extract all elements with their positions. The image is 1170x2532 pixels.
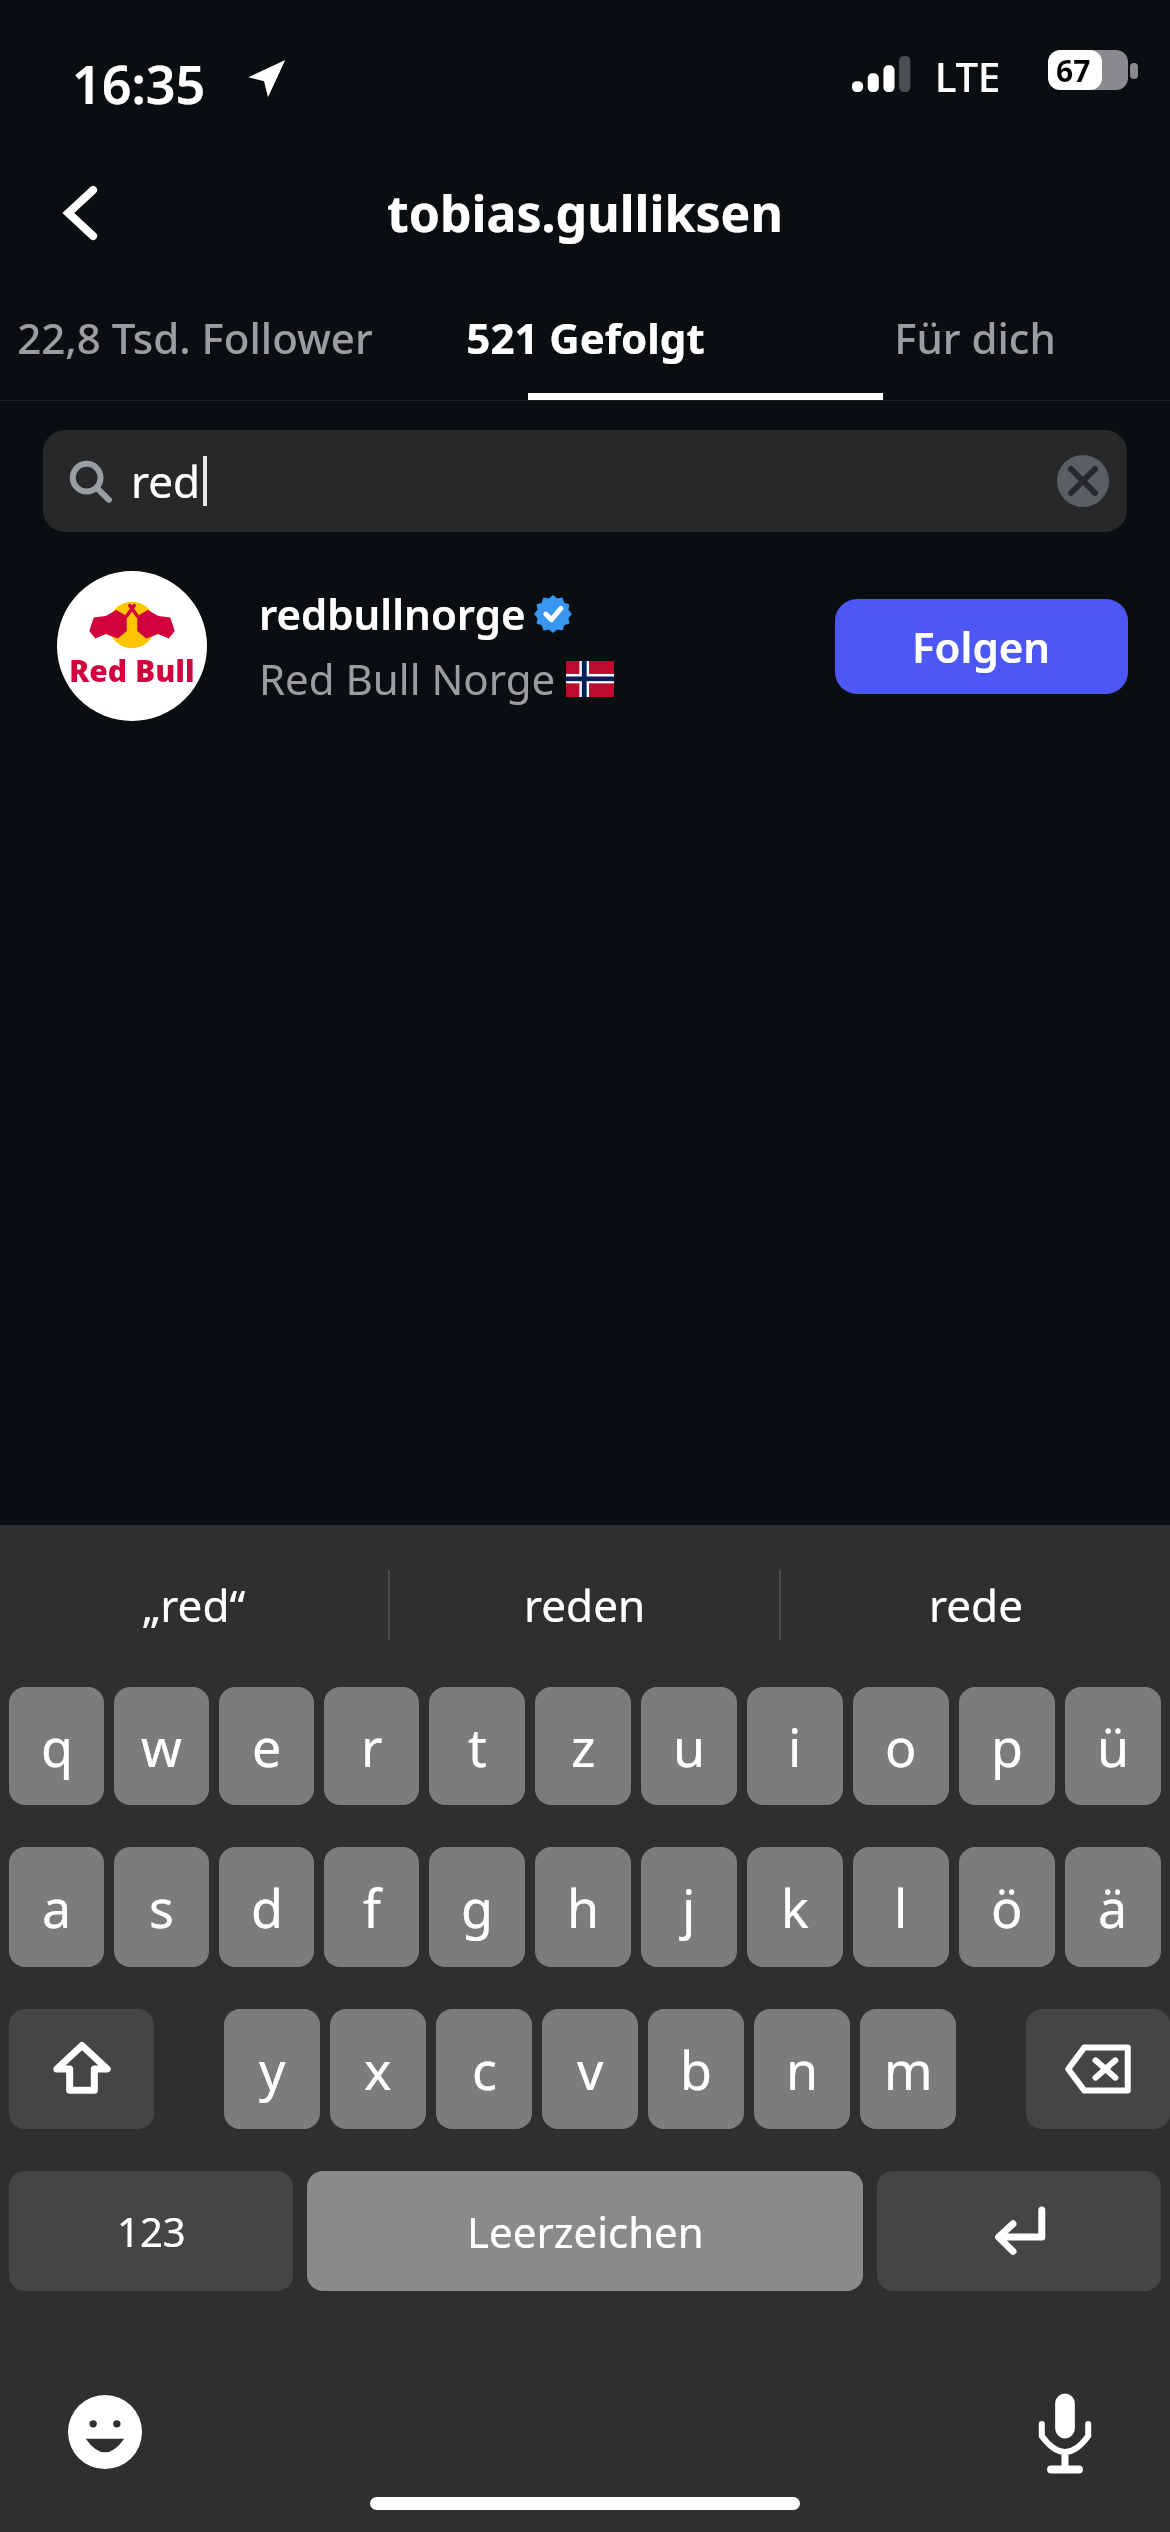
button[interactable]: p: [959, 1687, 1055, 1805]
button[interactable]: x: [330, 2009, 426, 2129]
button[interactable]: reden: [390, 1525, 779, 1685]
button[interactable]: b: [648, 2009, 744, 2129]
staticText: Red Bull: [69, 650, 195, 691]
staticText: Für dich: [894, 309, 1056, 366]
button[interactable]: d: [219, 1847, 314, 1967]
staticText: b: [680, 2034, 712, 2105]
staticText: q: [41, 1711, 73, 1782]
staticText: 22,8 Tsd. Follower: [17, 309, 373, 366]
button[interactable]: f: [324, 1847, 419, 1967]
staticText: r: [361, 1711, 383, 1782]
staticText: LTE: [935, 49, 1001, 103]
staticText: s: [149, 1872, 174, 1943]
staticText: h: [567, 1872, 600, 1943]
button[interactable]: Back: [28, 158, 138, 268]
staticText: 521 Gefolgt: [466, 309, 705, 366]
button[interactable]: k: [747, 1847, 843, 1967]
button[interactable]: a: [9, 1847, 104, 1967]
button[interactable]: u: [641, 1687, 737, 1805]
staticText: d: [251, 1872, 283, 1943]
staticText: y: [259, 2034, 286, 2105]
staticText: ö: [991, 1872, 1023, 1943]
staticText: c: [472, 2034, 497, 2105]
button[interactable]: Return: [877, 2171, 1161, 2291]
button[interactable]: Backspace: [1026, 2009, 1170, 2129]
button[interactable]: o: [853, 1687, 949, 1805]
staticText: g: [461, 1872, 493, 1943]
button[interactable]: s: [114, 1847, 209, 1967]
staticText: reden: [524, 1575, 646, 1635]
button[interactable]: t: [429, 1687, 525, 1805]
button[interactable]: m: [860, 2009, 956, 2129]
staticText: m: [884, 2034, 933, 2105]
button[interactable]: red: [43, 430, 1127, 532]
button[interactable]: Leerzeichen: [307, 2171, 863, 2291]
button[interactable]: z: [535, 1687, 631, 1805]
staticText: 16:35: [72, 48, 206, 119]
button[interactable]: y: [224, 2009, 320, 2129]
staticText: a: [42, 1872, 72, 1943]
button[interactable]: v: [542, 2009, 638, 2129]
staticText: j: [682, 1872, 696, 1943]
button[interactable]: r: [324, 1687, 419, 1805]
staticText: i: [788, 1711, 802, 1782]
staticText: o: [885, 1711, 917, 1782]
button[interactable]: 123: [9, 2171, 293, 2291]
button[interactable]: j: [641, 1847, 737, 1967]
staticText: ü: [1097, 1711, 1130, 1782]
staticText: n: [786, 2034, 819, 2105]
staticText: 123: [117, 2204, 186, 2258]
staticText: f: [363, 1872, 381, 1943]
button[interactable]: l: [853, 1847, 949, 1967]
button[interactable]: Emoji: [60, 2387, 150, 2477]
button[interactable]: Folgen: [835, 599, 1128, 694]
button[interactable]: ü: [1065, 1687, 1161, 1805]
button[interactable]: 521 Gefolgt: [390, 275, 780, 400]
button[interactable]: e: [219, 1687, 314, 1805]
button[interactable]: q: [9, 1687, 104, 1805]
staticText: Red Bull Norge: [259, 650, 556, 707]
staticText: u: [673, 1711, 706, 1782]
staticText: v: [577, 2034, 604, 2105]
staticText: k: [781, 1872, 809, 1943]
button[interactable]: 22,8 Tsd. Follower: [0, 275, 390, 400]
staticText: t: [468, 1711, 487, 1782]
button[interactable]: Red Bull: [0, 561, 1170, 731]
staticText: 67: [1056, 50, 1091, 90]
button[interactable]: Shift: [9, 2009, 154, 2129]
button[interactable]: ö: [959, 1847, 1055, 1967]
staticText: x: [364, 2034, 392, 2105]
staticText: p: [991, 1711, 1023, 1782]
button[interactable]: „red“: [0, 1525, 388, 1685]
staticText: red: [131, 451, 201, 511]
button[interactable]: g: [429, 1847, 525, 1967]
staticText: z: [571, 1711, 596, 1782]
staticText: Folgen: [912, 618, 1051, 675]
button[interactable]: w: [114, 1687, 209, 1805]
staticText: „red“: [142, 1575, 246, 1635]
button[interactable]: i: [747, 1687, 843, 1805]
staticText: w: [141, 1711, 182, 1782]
staticText: tobias.gulliksen: [387, 179, 783, 247]
staticText: redbullnorge: [259, 585, 526, 642]
button[interactable]: h: [535, 1847, 631, 1967]
staticText: l: [894, 1872, 908, 1943]
button[interactable]: Dictation: [1020, 2387, 1110, 2477]
staticText: e: [252, 1711, 282, 1782]
button[interactable]: c: [436, 2009, 532, 2129]
staticText: Leerzeichen: [467, 2203, 704, 2260]
button[interactable]: Clear search: [1057, 455, 1109, 507]
button[interactable]: n: [754, 2009, 850, 2129]
staticText: ä: [1098, 1872, 1128, 1943]
button[interactable]: ä: [1065, 1847, 1161, 1967]
button[interactable]: rede: [781, 1525, 1170, 1685]
staticText: rede: [929, 1575, 1023, 1635]
button[interactable]: Für dich: [780, 275, 1170, 400]
